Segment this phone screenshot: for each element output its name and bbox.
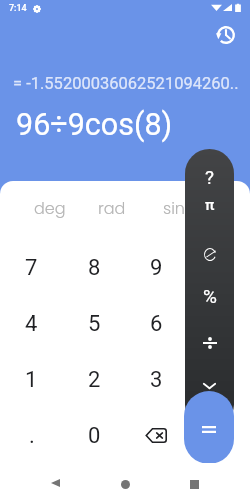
button[interactable]: 6 [125, 296, 187, 352]
button[interactable]: 7 [0, 240, 63, 296]
button[interactable]: Euler number e [185, 243, 234, 265]
button[interactable]: Back [38, 467, 72, 500]
staticText: 4 [25, 311, 38, 337]
staticText: 8 [88, 255, 101, 281]
button[interactable]: 1 [0, 352, 63, 408]
button[interactable]: 5 [63, 296, 125, 352]
button[interactable]: Percent [185, 285, 234, 307]
button[interactable]: 2 [63, 352, 125, 408]
button[interactable]: sin [143, 193, 205, 223]
staticText: 5 [88, 311, 101, 337]
button[interactable]: 4 [0, 296, 63, 352]
staticText: ? [205, 166, 214, 188]
button[interactable]: Divide [185, 332, 234, 354]
other: Delete [145, 428, 167, 443]
staticText: 7:14 [9, 3, 27, 14]
button[interactable]: Home [108, 467, 142, 500]
button[interactable]: Pi [185, 194, 234, 216]
button[interactable]: rad [81, 193, 143, 223]
staticText: 96÷9cos(8) [16, 107, 173, 143]
button[interactable]: Equals [184, 391, 234, 464]
button[interactable]: More operators [185, 380, 234, 392]
staticText: 6 [150, 311, 163, 337]
button[interactable]: . [0, 408, 63, 464]
staticText: rad [98, 197, 126, 219]
staticText: sin [163, 197, 185, 219]
button[interactable]: deg [19, 193, 81, 223]
button[interactable]: Delete [125, 408, 187, 464]
staticText: 3 [150, 367, 163, 393]
button[interactable]: Recents [177, 467, 211, 500]
staticText: 2 [88, 367, 101, 393]
staticText: 9 [150, 255, 163, 281]
staticText: % [203, 285, 217, 307]
button[interactable]: History [209, 19, 241, 51]
staticText: π [205, 196, 215, 214]
button[interactable]: 9 [125, 240, 187, 296]
staticText: . [29, 423, 35, 449]
button[interactable]: 8 [63, 240, 125, 296]
staticText: 1 [25, 367, 38, 393]
button[interactable]: 0 [63, 408, 125, 464]
staticText: 7 [25, 255, 38, 281]
button[interactable]: 3 [125, 352, 187, 408]
staticText: deg [34, 197, 66, 219]
staticText: = -1.55200036062521094260.. [13, 74, 239, 93]
button[interactable]: Help [185, 166, 234, 188]
staticText: 0 [88, 423, 101, 449]
